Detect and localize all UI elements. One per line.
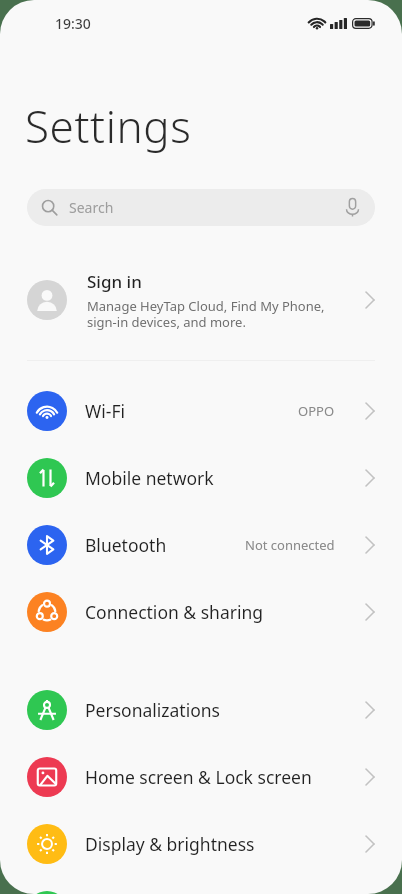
- button[interactable]: Sign in: [0, 260, 402, 340]
- staticText: 19:30: [55, 14, 91, 33]
- button[interactable]: Display & brightness: [0, 810, 402, 877]
- staticText: Sign in: [87, 270, 142, 293]
- button[interactable]: Home screen & Lock screen: [0, 743, 402, 810]
- staticText: Manage HeyTap Cloud, Find My Phone, sign…: [87, 297, 325, 331]
- button[interactable]: Connection & sharing: [0, 578, 402, 645]
- staticText: Wi-Fi: [85, 399, 298, 423]
- button[interactable]: Personalizations: [0, 676, 402, 743]
- staticText: Home screen & Lock screen: [85, 765, 365, 789]
- other: Open sign in: [365, 291, 375, 309]
- button[interactable]: Mobile network: [0, 444, 402, 511]
- staticText: Connection & sharing: [85, 600, 365, 624]
- staticText: OPPO: [298, 402, 335, 420]
- staticText: Personalizations: [85, 698, 365, 722]
- button[interactable]: Wi-Fi: [0, 377, 402, 444]
- staticText: Search: [69, 198, 114, 217]
- staticText: Not connected: [245, 536, 335, 554]
- staticText: Mobile network: [85, 466, 365, 490]
- button[interactable]: Search: [27, 189, 375, 226]
- button[interactable]: Sound & vibration: [0, 877, 402, 894]
- staticText: Bluetooth: [85, 533, 245, 557]
- staticText: Display & brightness: [85, 832, 365, 856]
- button[interactable]: Bluetooth: [0, 511, 402, 578]
- staticText: Settings: [25, 96, 192, 156]
